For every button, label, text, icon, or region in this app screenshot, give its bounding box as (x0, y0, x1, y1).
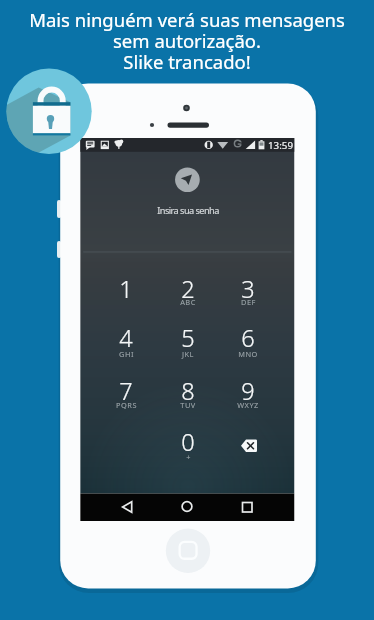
staticText: 4 (119, 322, 133, 354)
staticText: 0 (181, 426, 195, 458)
button[interactable] (158, 271, 218, 319)
button[interactable] (218, 321, 278, 369)
staticText: 7 (119, 375, 133, 407)
staticText: MNO (238, 349, 258, 359)
staticText: 8 (181, 375, 195, 407)
staticText: 9 (241, 375, 255, 407)
button[interactable] (218, 373, 278, 421)
button[interactable] (96, 271, 156, 319)
button[interactable] (96, 321, 156, 369)
button[interactable] (158, 425, 218, 473)
button[interactable]: Backspace (233, 428, 265, 458)
staticText: 1 (119, 273, 133, 305)
staticText: 3 (241, 273, 255, 305)
staticText: GHI (119, 349, 134, 359)
staticText: ABC (180, 297, 196, 307)
button[interactable] (218, 271, 278, 319)
button[interactable] (158, 373, 218, 421)
staticText: 5 (181, 322, 195, 354)
button[interactable] (96, 373, 156, 421)
staticText: Mais ninguém verá suas mensagens sem aut… (29, 7, 345, 74)
staticText: + (186, 452, 191, 462)
staticText: JKL (182, 349, 194, 359)
staticText: 13:59 (268, 139, 294, 152)
staticText: 2 (181, 273, 195, 305)
staticText: DEF (241, 297, 256, 307)
staticText: PQRS (116, 400, 137, 410)
staticText: Insira sua senha (157, 204, 219, 217)
staticText: 6 (241, 322, 255, 354)
staticText: TUV (180, 400, 196, 410)
button[interactable] (158, 321, 218, 369)
staticText: WXYZ (237, 400, 259, 410)
